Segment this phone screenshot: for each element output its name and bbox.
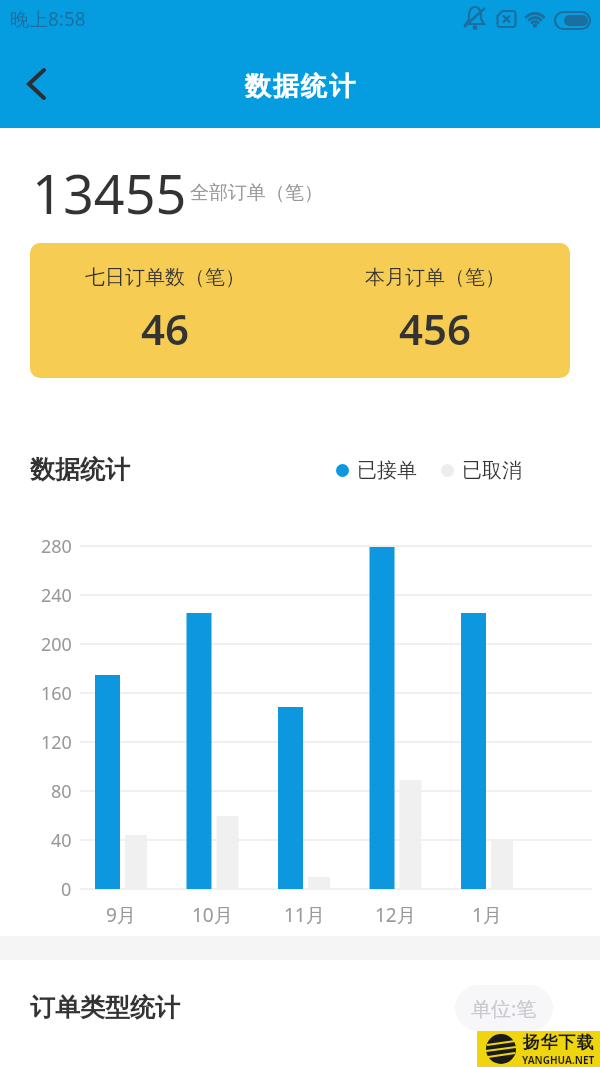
staticText: 单位:笔: [471, 995, 537, 1022]
staticText: 12月: [375, 902, 416, 928]
button[interactable]: [8, 56, 64, 112]
staticText: 数据统计: [30, 454, 130, 485]
staticText: 120: [41, 730, 72, 755]
staticText: 扬华下载: [522, 1032, 594, 1053]
staticText: 240: [41, 583, 72, 608]
staticText: 本月订单（笔）: [365, 265, 505, 290]
staticText: 0: [61, 877, 72, 902]
staticText: 9月: [106, 902, 136, 928]
staticText: 456: [399, 300, 472, 357]
staticText: 全部订单（笔）: [190, 181, 323, 205]
staticText: 已接单: [357, 458, 417, 483]
staticText: 晚上8:58: [10, 6, 86, 32]
staticText: 数据统计: [244, 70, 356, 103]
button[interactable]: 七日订单数（笔）: [30, 243, 570, 378]
staticText: 1月: [472, 902, 502, 928]
staticText: 80: [51, 779, 72, 804]
staticText: 200: [41, 632, 72, 657]
staticText: 40: [51, 828, 72, 853]
staticText: 10月: [192, 902, 233, 928]
staticText: 13455: [32, 156, 187, 230]
staticText: 订单类型统计: [30, 992, 180, 1023]
staticText: 46: [141, 300, 190, 357]
staticText: 280: [41, 534, 72, 559]
staticText: 11月: [284, 902, 325, 928]
staticText: 七日订单数（笔）: [85, 265, 245, 290]
staticText: 已取消: [462, 458, 522, 483]
staticText: YANGHUA.NET: [522, 1053, 595, 1067]
staticText: 160: [41, 681, 72, 706]
